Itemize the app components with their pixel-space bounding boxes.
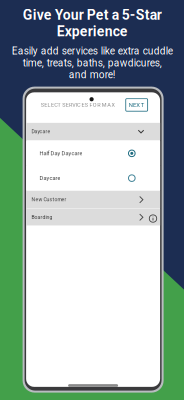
staticText: New Customer [31,197,66,203]
staticText: NEXT [129,101,145,108]
button[interactable]: Daycare [26,123,160,140]
staticText: Boarding [31,214,52,220]
staticText: SELECT SERVICES FOR MAX [41,102,115,108]
button[interactable]: Daycare [26,166,160,190]
staticText: Easily add services like extra cuddle ti… [11,45,172,81]
button[interactable]: Half Day Daycare [26,141,160,166]
button[interactable]: SELECT SERVICES FOR MAX [41,102,115,108]
button[interactable]: Boarding [26,209,160,225]
staticText: Half Day Daycare [39,150,82,157]
button[interactable]: New Customer [26,191,160,209]
staticText: Daycare [39,175,60,181]
staticText: Daycare [31,129,50,134]
staticText: Give Your Pet a 5-Star Experience [22,7,161,40]
button[interactable]: Boarding information [148,214,157,223]
button[interactable]: NEXT [126,99,148,111]
